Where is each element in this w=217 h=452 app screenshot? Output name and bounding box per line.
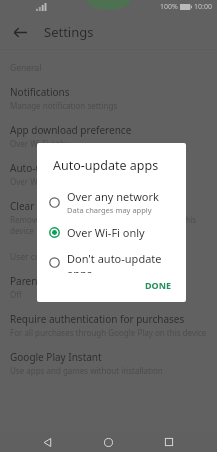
staticText: Data charges may apply — [67, 205, 152, 215]
staticText: Don't auto-update apps — [67, 251, 186, 273]
button[interactable]: Home — [95, 432, 121, 452]
staticText: 100% — [160, 2, 178, 12]
button[interactable]: Over Wi-Fi only — [37, 221, 186, 243]
staticText: Over any network — [67, 189, 159, 204]
staticText: Remove the searches you have performed o… — [10, 214, 207, 236]
staticText: Off — [10, 289, 22, 300]
staticText: DONE — [145, 279, 172, 291]
staticText: Manage notification settings — [10, 100, 118, 111]
staticText: Auto-update apps — [53, 157, 159, 174]
button[interactable]: DONE — [139, 275, 178, 295]
staticText: Parental controls — [10, 274, 90, 288]
staticText: For all purchases through Google Play on… — [10, 327, 207, 338]
button[interactable]: Recent apps — [156, 432, 182, 452]
staticText: App download preference — [10, 123, 132, 137]
button[interactable]: Auto-update apps — [0, 160, 217, 188]
button[interactable]: App download preference — [0, 122, 217, 150]
button[interactable]: Don't auto-update apps — [37, 251, 186, 273]
button[interactable]: Notifications — [0, 84, 217, 112]
staticText: 10:00 — [194, 2, 212, 12]
staticText: Clear local search history — [10, 199, 128, 213]
staticText: Google Play Instant — [10, 350, 102, 364]
staticText: Notifications — [10, 85, 70, 99]
button[interactable]: Parental controls — [0, 273, 217, 301]
staticText: Settings — [44, 23, 94, 41]
button[interactable]: Google Play Instant — [0, 349, 217, 377]
staticText: Auto-update apps — [10, 161, 95, 175]
staticText: User controls — [10, 251, 64, 263]
staticText: Use apps and games without installation — [10, 365, 163, 376]
button[interactable]: Clear local search history — [0, 198, 217, 237]
staticText: General — [10, 62, 42, 74]
staticText: Over Wi-Fi only — [10, 176, 67, 187]
button[interactable]: Over any network — [37, 187, 186, 217]
staticText: Require authentication for purchases — [10, 312, 185, 326]
button[interactable]: Back — [6, 18, 34, 46]
button[interactable]: Back — [34, 432, 60, 452]
button[interactable]: Require authentication for purchases — [0, 311, 217, 339]
staticText: Over Wi-Fi only — [10, 138, 67, 149]
staticText: Over Wi-Fi only — [67, 225, 145, 240]
